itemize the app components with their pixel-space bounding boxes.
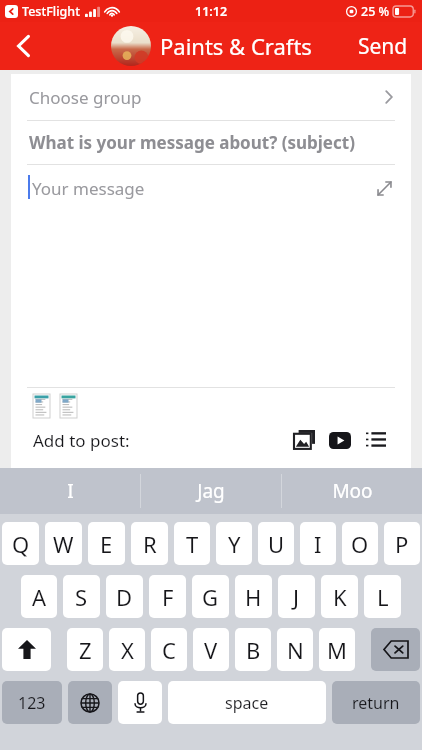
- button[interactable]: I: [300, 522, 336, 565]
- button[interactable]: Backspace: [371, 628, 420, 671]
- button[interactable]: Add list: [363, 427, 389, 453]
- staticText: Your message: [32, 177, 145, 200]
- button[interactable]: T: [174, 522, 210, 565]
- button[interactable]: D: [106, 575, 143, 618]
- staticText: X: [121, 635, 134, 665]
- button[interactable]: R: [131, 522, 168, 565]
- button[interactable]: Shift: [2, 628, 51, 671]
- staticText: Add to post:: [33, 429, 130, 452]
- button[interactable]: Send: [344, 22, 422, 70]
- staticText: R: [143, 529, 157, 559]
- button[interactable]: Z: [67, 628, 103, 671]
- staticText: H: [245, 582, 262, 612]
- button[interactable]: S: [63, 575, 100, 618]
- staticText: Send: [358, 32, 408, 61]
- staticText: T: [186, 529, 199, 559]
- staticText: F: [162, 582, 174, 612]
- button[interactable]: N: [277, 628, 313, 671]
- button[interactable]: Group avatar: [111, 26, 151, 66]
- button[interactable]: U: [258, 522, 294, 565]
- staticText: B: [246, 635, 261, 665]
- staticText: 11:12: [195, 3, 228, 20]
- button[interactable]: return: [332, 681, 420, 724]
- button[interactable]: What is your message about? (subject): [11, 121, 411, 164]
- staticText: S: [75, 582, 88, 612]
- staticText: O: [351, 529, 369, 559]
- staticText: Moo: [332, 478, 373, 504]
- staticText: 25 %: [361, 3, 390, 20]
- staticText: K: [333, 582, 347, 612]
- staticText: Z: [79, 635, 92, 665]
- staticText: I: [67, 478, 74, 504]
- button[interactable]: Back: [0, 22, 46, 70]
- button[interactable]: space: [168, 681, 326, 724]
- button[interactable]: M: [319, 628, 355, 671]
- button[interactable]: Y: [216, 522, 252, 565]
- button[interactable]: O: [342, 522, 378, 565]
- button[interactable]: Moo: [282, 468, 422, 514]
- staticText: 123: [18, 692, 46, 714]
- button[interactable]: Change keyboard: [68, 681, 112, 724]
- button[interactable]: Add video: [327, 427, 353, 453]
- button[interactable]: Expand message: [373, 177, 395, 199]
- button[interactable]: Dictate: [118, 681, 162, 724]
- staticText: Paints & Crafts: [160, 31, 312, 61]
- staticText: W: [53, 529, 74, 559]
- button[interactable]: W: [45, 522, 82, 565]
- button[interactable]: Choose group: [11, 74, 411, 120]
- button[interactable]: I: [0, 468, 140, 514]
- button[interactable]: C: [151, 628, 187, 671]
- button[interactable]: K: [321, 575, 358, 618]
- button[interactable]: J: [278, 575, 315, 618]
- staticText: Jag: [197, 478, 225, 504]
- staticText: What is your message about? (subject): [29, 131, 355, 154]
- staticText: D: [116, 582, 133, 612]
- staticText: C: [162, 635, 176, 665]
- staticText: Choose group: [29, 86, 142, 109]
- staticText: space: [225, 692, 269, 714]
- staticText: J: [293, 582, 300, 612]
- staticText: Y: [228, 529, 241, 559]
- button[interactable]: F: [149, 575, 186, 618]
- staticText: A: [32, 582, 47, 612]
- staticText: return: [352, 692, 400, 714]
- button[interactable]: V: [193, 628, 229, 671]
- button[interactable]: B: [235, 628, 271, 671]
- button[interactable]: E: [88, 522, 125, 565]
- staticText: M: [327, 635, 347, 665]
- button[interactable]: Q: [2, 522, 39, 565]
- staticText: Q: [12, 529, 30, 559]
- staticText: L: [377, 582, 389, 612]
- staticText: N: [287, 635, 304, 665]
- button[interactable]: X: [109, 628, 145, 671]
- button[interactable]: Your message: [11, 165, 411, 387]
- staticText: P: [395, 529, 409, 559]
- staticText: U: [268, 529, 285, 559]
- staticText: V: [204, 635, 218, 665]
- button[interactable]: 123: [2, 681, 62, 724]
- button[interactable]: L: [364, 575, 401, 618]
- staticText: I: [314, 529, 322, 559]
- button[interactable]: Add photo: [291, 427, 317, 453]
- button[interactable]: H: [235, 575, 272, 618]
- staticText: E: [100, 529, 113, 559]
- staticText: G: [202, 582, 219, 612]
- staticText: TestFlight: [22, 3, 80, 20]
- button[interactable]: Jag: [141, 468, 281, 514]
- button[interactable]: P: [384, 522, 420, 565]
- button[interactable]: G: [192, 575, 229, 618]
- button[interactable]: A: [21, 575, 57, 618]
